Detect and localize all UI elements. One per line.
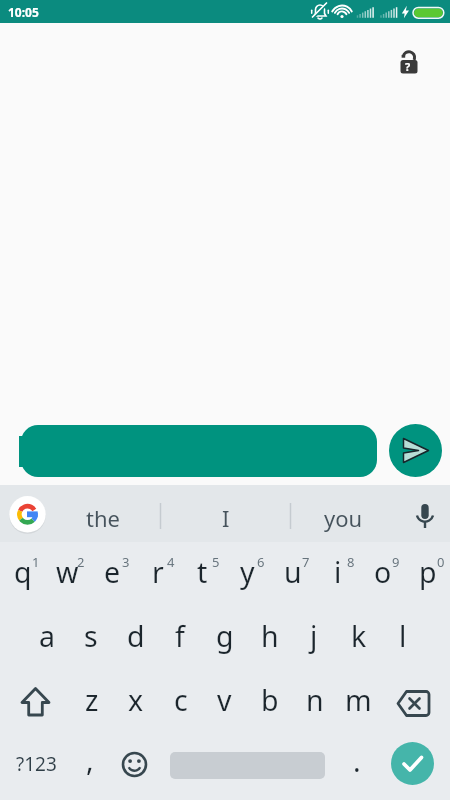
- button[interactable]: f: [157, 605, 202, 667]
- staticText: j: [310, 617, 318, 656]
- button[interactable]: [391, 742, 434, 785]
- staticText: 3: [122, 553, 130, 567]
- staticText: v: [217, 681, 232, 720]
- staticText: 2: [77, 553, 85, 567]
- staticText: u: [284, 553, 302, 592]
- button[interactable]: s: [68, 605, 113, 667]
- button[interactable]: u: [270, 541, 315, 603]
- staticText: y: [240, 553, 255, 592]
- button[interactable]: i: [315, 541, 360, 603]
- staticText: p: [419, 553, 437, 592]
- staticText: ?: [405, 59, 411, 74]
- button[interactable]: a: [24, 605, 69, 667]
- button[interactable]: [21, 425, 377, 477]
- button[interactable]: t: [180, 541, 225, 603]
- button[interactable]: b: [247, 669, 292, 731]
- staticText: ?123: [16, 751, 57, 777]
- button[interactable]: j: [291, 605, 336, 667]
- staticText: r: [152, 553, 164, 592]
- button[interactable]: [396, 48, 424, 76]
- staticText: k: [351, 617, 367, 656]
- button[interactable]: h: [247, 605, 292, 667]
- staticText: l: [399, 617, 407, 656]
- button[interactable]: [389, 424, 442, 477]
- button[interactable]: [386, 674, 442, 740]
- button[interactable]: ?123: [9, 734, 64, 794]
- staticText: c: [174, 681, 188, 720]
- button[interactable]: e: [90, 541, 135, 603]
- staticText: x: [128, 681, 144, 720]
- staticText: o: [374, 553, 392, 592]
- staticText: ,: [86, 741, 94, 780]
- button[interactable]: c: [158, 669, 203, 731]
- staticText: 7: [302, 553, 310, 567]
- staticText: 0: [437, 553, 445, 567]
- button[interactable]: [408, 500, 442, 534]
- staticText: 4: [167, 553, 175, 567]
- staticText: 1: [32, 553, 40, 567]
- staticText: 9: [392, 553, 400, 567]
- staticText: 6: [257, 553, 265, 567]
- staticText: I: [222, 503, 230, 533]
- staticText: b: [261, 681, 279, 720]
- staticText: 10:05: [8, 4, 39, 20]
- button[interactable]: y: [225, 541, 270, 603]
- button[interactable]: [112, 740, 157, 790]
- staticText: 8: [347, 553, 355, 567]
- button[interactable]: .: [335, 730, 379, 792]
- button[interactable]: [9, 496, 46, 533]
- staticText: a: [39, 617, 55, 656]
- staticText: .: [353, 742, 361, 781]
- button[interactable]: d: [113, 605, 158, 667]
- button[interactable]: g: [202, 605, 247, 667]
- staticText: you: [324, 503, 363, 533]
- button[interactable]: q: [0, 541, 45, 603]
- button[interactable]: r: [135, 541, 180, 603]
- staticText: h: [261, 617, 279, 656]
- staticText: z: [85, 681, 99, 720]
- button[interactable]: z: [69, 669, 114, 731]
- button[interactable]: ,: [68, 729, 112, 791]
- staticText: e: [104, 553, 121, 592]
- staticText: d: [127, 617, 145, 656]
- staticText: m: [345, 681, 372, 720]
- button[interactable]: I: [166, 500, 285, 536]
- staticText: 5: [212, 553, 220, 567]
- staticText: q: [14, 553, 32, 592]
- staticText: g: [216, 617, 234, 656]
- button[interactable]: o: [360, 541, 405, 603]
- staticText: i: [334, 553, 342, 592]
- staticText: the: [86, 503, 120, 533]
- staticText: w: [56, 553, 79, 592]
- button[interactable]: the: [61, 500, 145, 536]
- staticText: s: [84, 617, 98, 656]
- button[interactable]: k: [336, 605, 381, 667]
- button[interactable]: v: [202, 669, 247, 731]
- button[interactable]: l: [380, 605, 425, 667]
- staticText: t: [197, 553, 208, 592]
- button[interactable]: p: [405, 541, 450, 603]
- button[interactable]: n: [292, 669, 337, 731]
- button[interactable]: [8, 674, 63, 740]
- button[interactable]: x: [113, 669, 158, 731]
- staticText: n: [306, 681, 324, 720]
- button[interactable]: w: [45, 541, 90, 603]
- button[interactable]: you: [296, 500, 390, 536]
- staticText: f: [175, 617, 185, 656]
- button[interactable]: m: [336, 669, 381, 731]
